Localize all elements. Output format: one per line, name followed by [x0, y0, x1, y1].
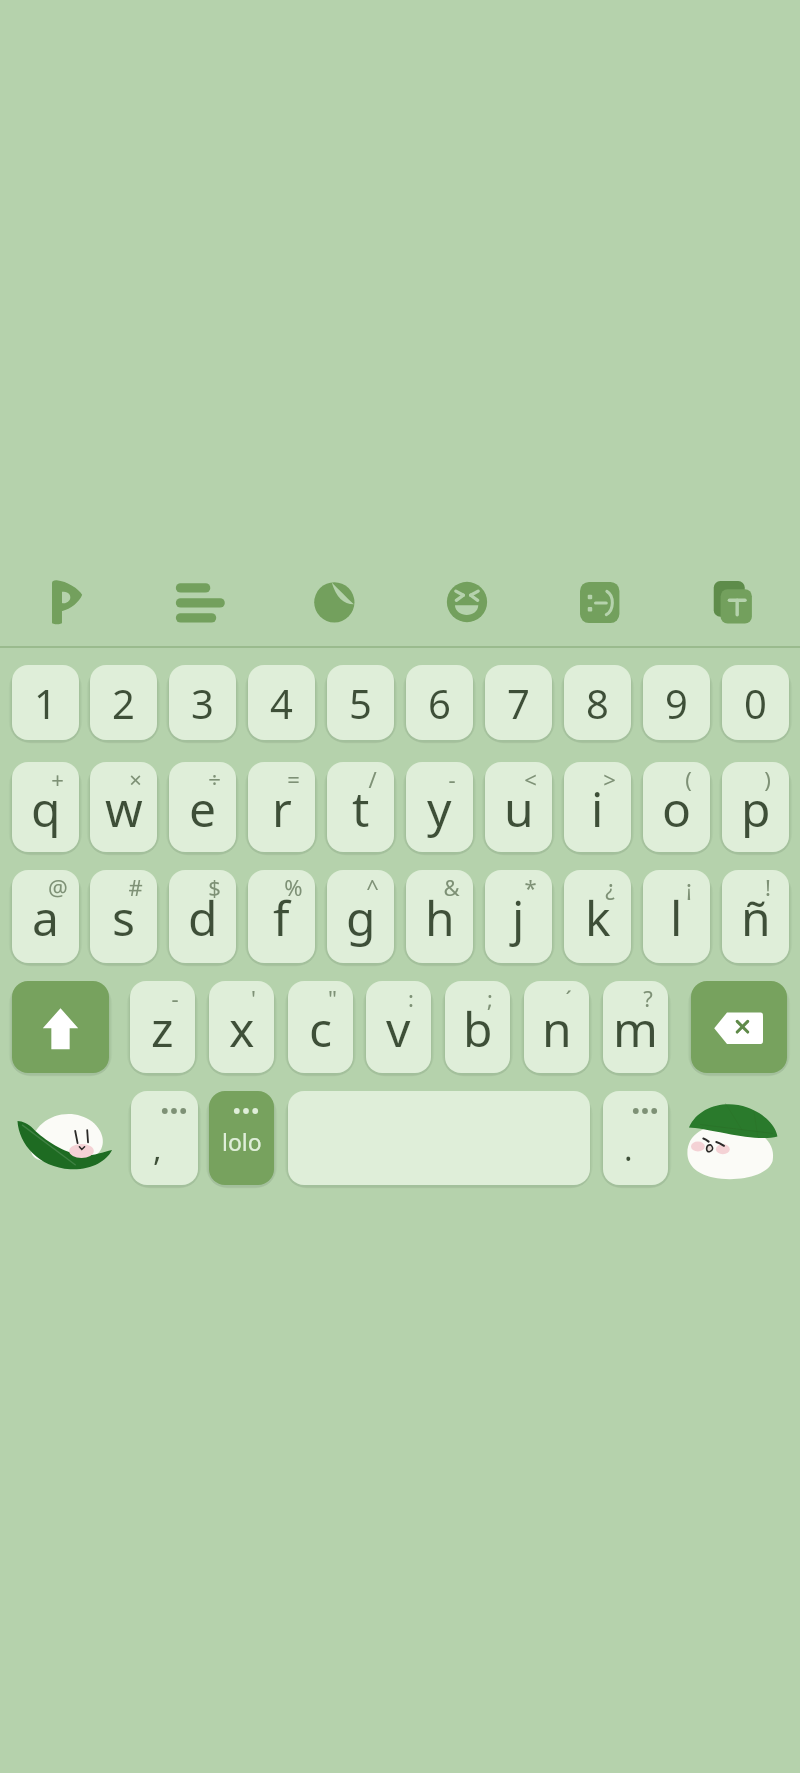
button[interactable]: 4 — [248, 665, 315, 740]
staticText: r — [272, 776, 292, 841]
staticText: c — [309, 996, 333, 1061]
button[interactable]: / — [327, 762, 394, 852]
staticText: e — [189, 776, 217, 841]
staticText: + — [51, 764, 64, 794]
staticText: d — [188, 885, 218, 950]
staticText: % — [284, 872, 303, 902]
button[interactable]: < — [485, 762, 552, 852]
button[interactable]: Switch keyboard — [209, 1091, 274, 1185]
button[interactable]: 5 — [327, 665, 394, 740]
button[interactable]: . — [603, 1091, 668, 1185]
button[interactable]: ( — [643, 762, 710, 852]
staticText: u — [504, 776, 534, 841]
button[interactable]: Keyboard menu — [34, 569, 100, 635]
staticText: b — [463, 996, 493, 1061]
button[interactable]: , — [131, 1091, 198, 1185]
button[interactable]: Backspace — [691, 981, 787, 1073]
button[interactable]: × — [90, 762, 157, 852]
button[interactable]: Theme — [301, 569, 367, 635]
button[interactable]: ? — [603, 981, 668, 1073]
staticText: z — [151, 996, 174, 1061]
staticText: a — [32, 885, 59, 950]
button[interactable]: ; — [445, 981, 510, 1073]
staticText: f — [273, 885, 290, 950]
button[interactable]: 7 — [485, 665, 552, 740]
button[interactable]: Shift — [12, 981, 109, 1073]
staticText: y — [427, 776, 452, 841]
staticText: 3 — [191, 676, 214, 730]
button[interactable]: ! — [722, 870, 789, 963]
staticText: = — [287, 764, 300, 794]
button[interactable]: # — [90, 870, 157, 963]
staticText: ; — [487, 983, 493, 1013]
staticText: @ — [48, 872, 68, 902]
button[interactable]: ) — [722, 762, 789, 852]
staticText: < — [524, 764, 537, 794]
button[interactable]: > — [564, 762, 631, 852]
button[interactable]: ÷ — [169, 762, 236, 852]
button[interactable]: = — [248, 762, 315, 852]
staticText: > — [603, 764, 616, 794]
staticText: - — [171, 983, 179, 1013]
staticText: ) — [764, 764, 771, 794]
button[interactable]: - — [406, 762, 473, 852]
button[interactable]: 9 — [643, 665, 710, 740]
button[interactable]: 1 — [12, 665, 79, 740]
button[interactable]: 6 — [406, 665, 473, 740]
staticText: ÷ — [208, 764, 221, 794]
staticText: 2 — [112, 676, 135, 730]
button[interactable]: ´ — [524, 981, 589, 1073]
staticText: " — [328, 983, 337, 1013]
staticText: 6 — [428, 676, 451, 730]
button[interactable]: @ — [12, 870, 79, 963]
staticText: ? — [643, 983, 653, 1013]
button[interactable]: ¿ — [564, 870, 631, 963]
staticText: , — [153, 1127, 162, 1171]
staticText: $ — [208, 872, 221, 902]
button[interactable]: $ — [169, 870, 236, 963]
staticText: h — [425, 885, 455, 950]
button[interactable]: % — [248, 870, 315, 963]
staticText: 4 — [270, 676, 293, 730]
button[interactable]: ' — [209, 981, 274, 1073]
staticText: p — [741, 776, 771, 841]
staticText: 9 — [665, 676, 688, 730]
staticText: 7 — [507, 676, 530, 730]
staticText: k — [585, 885, 611, 950]
staticText: : — [408, 983, 414, 1013]
button[interactable]: Text style — [167, 569, 233, 635]
button[interactable]: " — [288, 981, 353, 1073]
staticText: ´ — [565, 983, 572, 1013]
staticText: j — [512, 885, 525, 950]
button[interactable]: Emoticons — [568, 569, 634, 635]
staticText: o — [662, 776, 692, 841]
staticText: 1 — [34, 676, 57, 730]
button[interactable]: 0 — [722, 665, 789, 740]
button[interactable]: & — [406, 870, 473, 963]
button[interactable]: ¡ — [643, 870, 710, 963]
staticText: l — [670, 885, 683, 950]
button[interactable]: Emoji — [434, 569, 500, 635]
button[interactable]: - — [130, 981, 195, 1073]
button[interactable]: 8 — [564, 665, 631, 740]
staticText: m — [613, 996, 658, 1061]
button[interactable]: ^ — [327, 870, 394, 963]
button[interactable]: 3 — [169, 665, 236, 740]
staticText: ^ — [366, 872, 379, 902]
staticText: ¿ — [605, 872, 615, 902]
button[interactable]: : — [366, 981, 431, 1073]
button[interactable]: Space — [288, 1091, 590, 1185]
staticText: & — [443, 872, 460, 902]
staticText: x — [229, 996, 255, 1061]
staticText: t — [352, 776, 370, 841]
staticText: ñ — [741, 885, 771, 950]
staticText: ! — [765, 872, 771, 902]
button[interactable]: + — [12, 762, 79, 852]
staticText: ( — [685, 764, 692, 794]
staticText: ¡ — [686, 872, 692, 902]
button[interactable]: * — [485, 870, 552, 963]
button[interactable]: Text stickers — [701, 569, 767, 635]
staticText: lolo — [222, 1126, 262, 1157]
staticText: w — [105, 776, 143, 841]
button[interactable]: 2 — [90, 665, 157, 740]
